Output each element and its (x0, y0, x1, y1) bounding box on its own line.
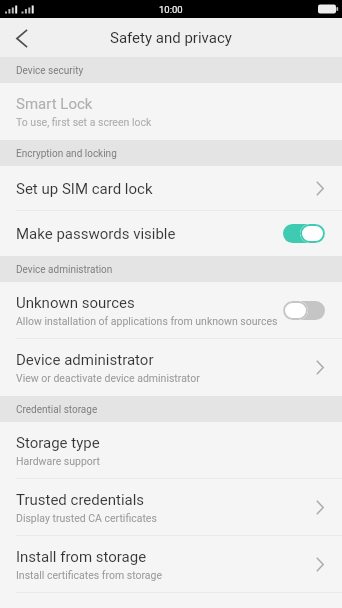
staticText: 10:00 (159, 4, 183, 15)
staticText: Install certificates from storage (16, 569, 163, 581)
button[interactable] (8, 24, 36, 52)
button[interactable]: Device administrator (0, 339, 342, 396)
staticText: Device administration (16, 264, 113, 276)
staticText: Safety and privacy (110, 29, 232, 47)
staticText: Allow installation of applications from … (16, 315, 278, 327)
button[interactable]: Unknown sources (0, 282, 342, 339)
staticText: Unknown sources (16, 294, 135, 312)
staticText: Trusted credentials (16, 491, 145, 509)
button[interactable]: Install from storage (0, 536, 342, 593)
staticText: To use, first set a screen lock (16, 116, 152, 128)
button[interactable]: Smart Lock (0, 83, 342, 140)
staticText: Credential storage (16, 404, 98, 416)
staticText: Storage type (16, 434, 100, 452)
staticText: Install from storage (16, 548, 147, 566)
staticText: Device security (16, 65, 84, 77)
staticText: Hardware support (16, 455, 101, 467)
button[interactable]: Storage type (0, 422, 342, 479)
staticText: Make passwords visible (16, 225, 176, 243)
staticText: Smart Lock (16, 95, 93, 113)
button[interactable]: Make passwords visible (0, 211, 342, 256)
staticText: Set up SIM card lock (16, 180, 153, 198)
staticText: Encryption and locking (16, 148, 117, 160)
button[interactable]: Trusted credentials (0, 479, 342, 536)
button[interactable]: Set up SIM card lock (0, 166, 342, 211)
staticText: View or deactivate device administrator (16, 372, 200, 384)
button[interactable] (283, 301, 325, 320)
staticText: Display trusted CA certificates (16, 512, 157, 524)
staticText: Device administrator (16, 351, 154, 369)
button[interactable] (283, 224, 325, 243)
